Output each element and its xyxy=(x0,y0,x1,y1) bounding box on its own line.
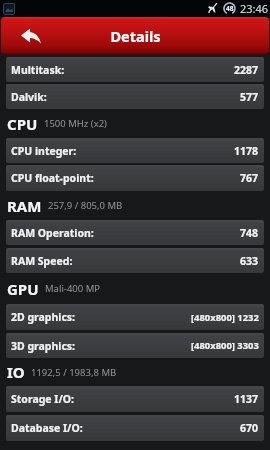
button[interactable]: RAM Speed: xyxy=(6,248,264,273)
staticText: 1178 xyxy=(234,144,259,158)
staticText: 633 xyxy=(240,254,259,268)
button[interactable]: RAM Operation: xyxy=(6,220,264,245)
staticText: 577 xyxy=(240,90,259,104)
staticText: 1500 MHz (x2) xyxy=(44,117,107,130)
staticText: RAM Speed: xyxy=(11,254,73,268)
staticText: Details xyxy=(110,26,161,46)
staticText: RAM xyxy=(7,196,42,216)
button[interactable]: Dalvik: xyxy=(6,84,264,109)
staticText: [480x800] 1232 xyxy=(191,311,259,324)
staticText: CPU float-point: xyxy=(11,171,94,185)
staticText: IO xyxy=(7,362,25,382)
button[interactable]: 2D graphics: xyxy=(6,304,264,330)
staticText: 1137 xyxy=(234,392,259,406)
staticText: CPU xyxy=(7,114,38,134)
staticText: Storage I/O: xyxy=(11,392,75,406)
staticText: Multitask: xyxy=(11,63,65,77)
staticText: Mali-400 MP xyxy=(45,282,101,295)
staticText: 257,9 / 805,0 MB xyxy=(48,199,123,212)
staticText: 2287 xyxy=(234,63,259,77)
staticText: 2D graphics: xyxy=(11,310,76,324)
button[interactable]: Database I/O: xyxy=(6,415,264,441)
staticText: 767 xyxy=(240,171,259,185)
staticText: 670 xyxy=(240,421,259,435)
staticText: 3D graphics: xyxy=(11,339,76,353)
staticText: 1192,5 / 1983,8 MB xyxy=(31,366,117,379)
staticText: 748 xyxy=(240,226,259,240)
button[interactable]: Multitask: xyxy=(6,57,264,82)
staticText: Database I/O: xyxy=(11,421,83,435)
staticText: 23:46 xyxy=(240,1,269,16)
button[interactable]: CPU float-point: xyxy=(6,165,264,191)
staticText: 48 xyxy=(226,4,234,13)
staticText: RAM Operation: xyxy=(11,226,94,240)
button[interactable]: Storage I/O: xyxy=(6,386,264,412)
button[interactable]: CPU integer: xyxy=(6,138,264,163)
staticText: CPU integer: xyxy=(11,144,77,158)
staticText: Dalvik: xyxy=(11,90,47,104)
button[interactable]: Details xyxy=(1,17,269,54)
button[interactable]: 3D graphics: xyxy=(6,333,264,358)
staticText: GPU xyxy=(7,279,39,299)
staticText: [480x800] 3303 xyxy=(191,339,259,352)
